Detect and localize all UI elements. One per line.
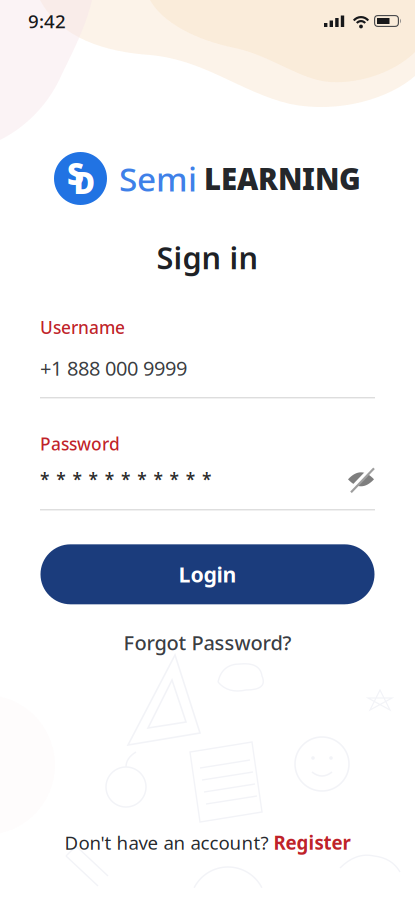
staticText: Sign in [156, 237, 258, 278]
staticText: Login [178, 560, 236, 588]
staticText: * * * * * * * * * * * [40, 468, 211, 491]
staticText: D [73, 163, 95, 202]
staticText: LEARNING [204, 159, 361, 198]
staticText: Password [40, 432, 120, 455]
button[interactable]: Show password [348, 467, 375, 491]
staticText: +1 888 000 9999 [40, 355, 187, 381]
button[interactable]: Forgot Password? [123, 629, 291, 656]
button[interactable]: Don't have an account? [64, 830, 350, 855]
staticText: S [67, 154, 84, 193]
staticText: Register [273, 830, 350, 855]
staticText: Forgot Password? [123, 629, 291, 656]
staticText: Don't have an account? [64, 830, 268, 855]
staticText: Username [40, 316, 125, 339]
staticText: Semi [119, 156, 197, 201]
staticText: 9:42 [28, 9, 66, 33]
button[interactable]: Login [40, 544, 374, 604]
